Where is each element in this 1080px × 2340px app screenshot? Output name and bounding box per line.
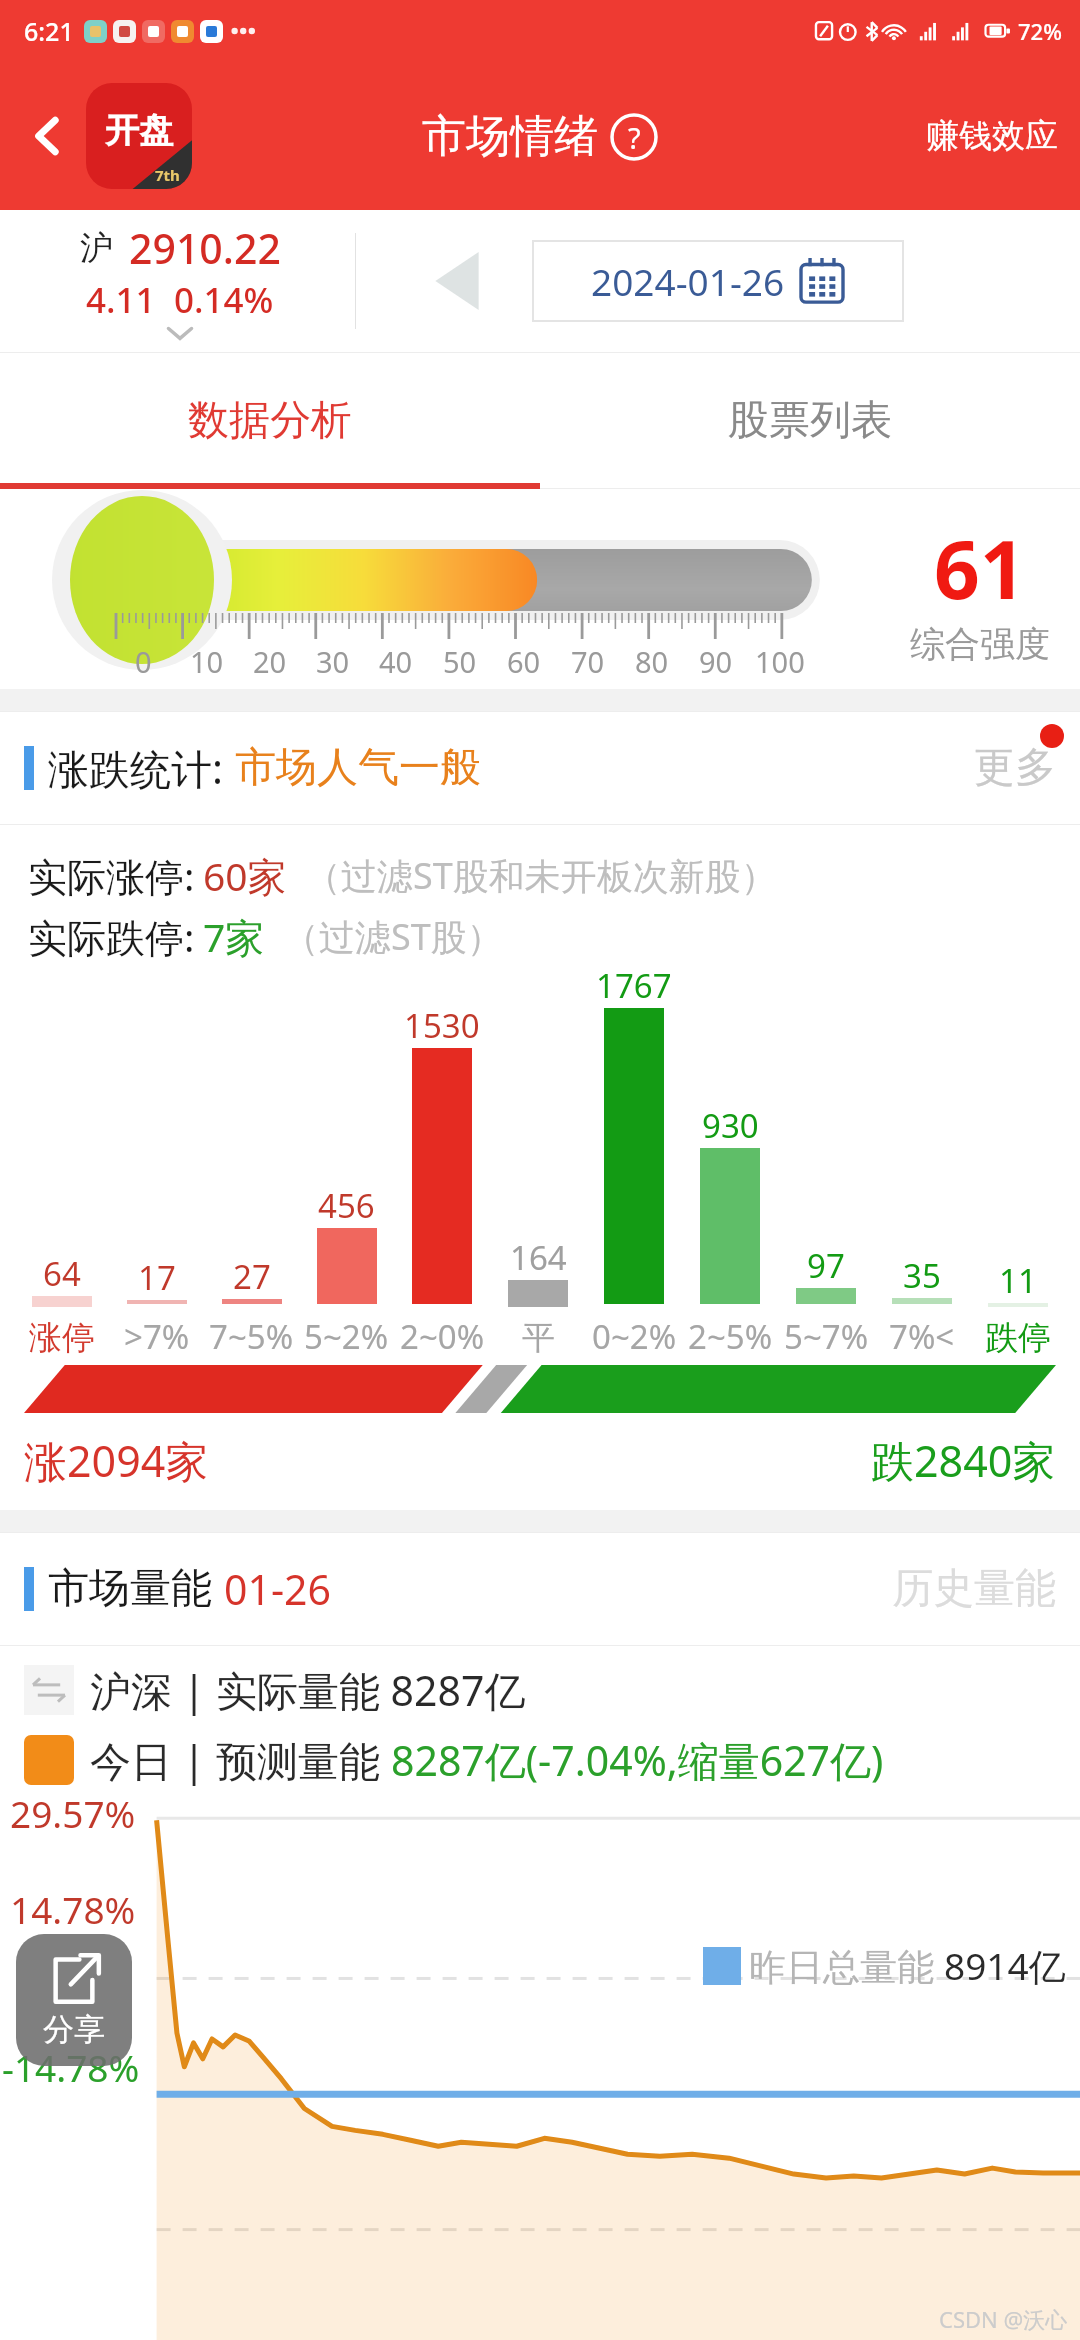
staticText: 涨停	[29, 1317, 95, 1359]
staticText: 72%	[1018, 16, 1062, 46]
button[interactable]: 1530	[394, 963, 490, 1359]
staticText: 20	[253, 642, 287, 681]
button[interactable]: 17	[109, 963, 204, 1359]
button[interactable]: 27	[204, 963, 299, 1359]
staticText: （过滤ST股和未开板次新股）	[305, 851, 777, 900]
staticText: CSDN @沃心	[939, 2304, 1068, 2334]
staticText: 97	[807, 1243, 845, 1288]
staticText: 4.11	[86, 276, 156, 324]
staticText: 7%<	[889, 1314, 955, 1359]
staticText: 10	[190, 642, 224, 681]
button[interactable]: 2024-01-26	[533, 241, 903, 321]
staticText: 1767	[596, 963, 672, 1008]
button[interactable]: 沪	[20, 220, 340, 342]
button[interactable]: Help	[610, 113, 658, 161]
staticText: 昨日总量能	[749, 1940, 944, 1991]
staticText: 80	[635, 642, 669, 681]
staticText: 更多	[974, 742, 1056, 794]
button[interactable]: 64	[14, 966, 109, 1359]
staticText: 30	[316, 642, 350, 681]
button[interactable]: 更多	[974, 742, 1056, 794]
button[interactable]: Back	[10, 98, 86, 174]
staticText: 5~2%	[304, 1314, 389, 1359]
staticText: 61	[934, 513, 1026, 622]
staticText: 7家	[203, 910, 265, 963]
staticText: 5~7%	[784, 1314, 869, 1359]
staticText: 0.14%	[174, 276, 274, 324]
staticText: 开盘	[105, 109, 173, 152]
staticText: 股票列表	[728, 395, 892, 447]
staticText: 赚钱效应	[926, 115, 1058, 157]
button[interactable]: 456	[299, 963, 394, 1359]
staticText: 实际涨停:	[28, 849, 195, 902]
staticText: 跌2840家	[871, 1431, 1056, 1490]
staticText: 29.57%	[10, 1788, 136, 1838]
button[interactable]: Previous day	[412, 236, 502, 326]
staticText: 64	[43, 1251, 81, 1296]
staticText: 8287亿(-7.04%,缩量627亿)	[391, 1732, 884, 1788]
staticText: 01-26	[224, 1561, 332, 1617]
staticText: 2910.22	[129, 220, 281, 276]
button[interactable]: 股票列表	[540, 353, 1080, 489]
staticText: 沪	[80, 227, 113, 269]
button[interactable]: 历史量能	[892, 1563, 1056, 1615]
button[interactable]: 赚钱效应	[926, 115, 1058, 157]
staticText: 实际跌停:	[28, 910, 195, 963]
staticText: 27	[233, 1254, 271, 1299]
button[interactable]: Share	[16, 1934, 132, 2066]
button[interactable]: 开盘	[86, 83, 192, 189]
staticText: 7th	[155, 165, 180, 185]
staticText: 70	[571, 642, 605, 681]
staticText: 1530	[404, 1003, 480, 1048]
button[interactable]: 1767	[586, 963, 682, 1359]
staticText: 2~0%	[400, 1314, 485, 1359]
staticText: 7~5%	[209, 1314, 294, 1359]
staticText: 2~5%	[688, 1314, 773, 1359]
staticText: 涨2094家	[24, 1431, 209, 1490]
staticText: ?	[628, 118, 641, 157]
staticText: 6:21	[24, 14, 74, 48]
staticText: 平	[522, 1317, 555, 1359]
staticText: 数据分析	[188, 395, 352, 447]
staticText: -14.78%	[2, 2042, 140, 2092]
button[interactable]: 97	[778, 963, 874, 1359]
staticText: 综合强度	[910, 622, 1050, 666]
staticText: 50	[443, 642, 477, 681]
staticText: 市场量能	[48, 1563, 212, 1615]
staticText: （过滤ST股）	[283, 912, 503, 961]
staticText: 40	[379, 642, 413, 681]
button[interactable]: 164	[490, 966, 586, 1359]
staticText: 今日 | 预测量能	[90, 1732, 391, 1788]
staticText: 60	[507, 642, 541, 681]
staticText: 市场情绪	[422, 109, 598, 164]
button[interactable]: 930	[682, 963, 778, 1359]
staticText: 456	[318, 1183, 375, 1228]
staticText: 8914亿	[944, 1940, 1066, 1991]
staticText: 164	[510, 1235, 567, 1280]
staticText: 涨跌统计:	[48, 740, 223, 796]
staticText: 11	[999, 1258, 1037, 1303]
staticText: 930	[702, 1103, 759, 1148]
staticText: 跌停	[985, 1317, 1051, 1359]
staticText: 0~2%	[592, 1314, 677, 1359]
staticText: 历史量能	[892, 1563, 1056, 1615]
button[interactable]: 数据分析	[0, 353, 540, 489]
staticText: 17	[138, 1255, 176, 1300]
staticText: 60家	[203, 849, 287, 902]
button[interactable]: 35	[874, 963, 970, 1359]
button[interactable]: 11	[970, 966, 1066, 1359]
staticText: 100	[755, 642, 805, 681]
staticText: 2024-01-26	[591, 256, 785, 306]
staticText: 35	[903, 1253, 941, 1298]
staticText: 90	[699, 642, 733, 681]
staticText: 市场人气一般	[235, 742, 481, 794]
staticText: 0	[135, 642, 152, 681]
staticText: 14.78%	[10, 1884, 136, 1934]
staticText: >7%	[124, 1314, 190, 1359]
staticText: 沪深 | 实际量能 8287亿	[90, 1662, 526, 1718]
staticText: 分享	[43, 2010, 105, 2049]
